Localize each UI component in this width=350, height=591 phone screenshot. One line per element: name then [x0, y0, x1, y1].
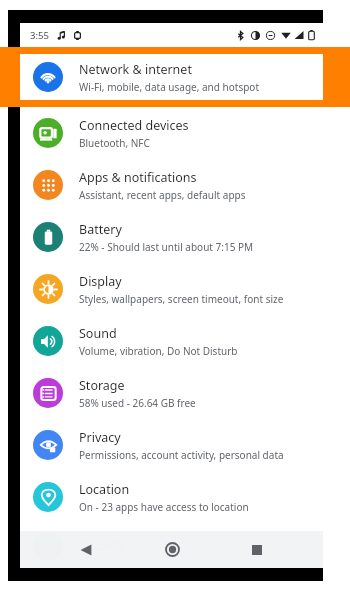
staticText: Sound: [79, 325, 117, 342]
button[interactable]: Storage: [20, 367, 323, 419]
button[interactable]: Home: [152, 531, 192, 568]
button[interactable]: Display: [20, 263, 323, 315]
staticText: Styles, wallpapers, screen timeout, font…: [79, 292, 284, 306]
button[interactable]: Battery: [20, 211, 323, 263]
staticText: 3:55: [30, 29, 49, 42]
staticText: Volume, vibration, Do Not Disturb: [79, 344, 238, 358]
button[interactable]: Network & internet: [20, 54, 323, 100]
staticText: Assistant, recent apps, default apps: [79, 188, 246, 202]
button[interactable]: Recent apps: [237, 531, 277, 568]
staticText: Apps & notifications: [79, 169, 197, 186]
button[interactable]: Sound: [20, 315, 323, 367]
staticText: 22% - Should last until about 7:15 PM: [79, 240, 254, 254]
button[interactable]: Security: [20, 523, 323, 568]
staticText: Wi-Fi, mobile, data usage, and hotspot: [79, 80, 259, 94]
staticText: Display: [79, 273, 122, 290]
staticText: Bluetooth, NFC: [79, 136, 150, 150]
staticText: Connected devices: [79, 117, 189, 134]
button[interactable]: Connected devices: [20, 107, 323, 159]
staticText: Security: [79, 537, 126, 554]
button[interactable]: Back: [66, 531, 106, 568]
button[interactable]: Location: [20, 471, 323, 523]
staticText: Storage: [79, 377, 125, 394]
staticText: 58% used - 26.64 GB free: [79, 396, 196, 410]
staticText: Permissions, account activity, personal …: [79, 448, 284, 462]
staticText: On - 23 apps have access to location: [79, 500, 249, 514]
button[interactable]: Privacy: [20, 419, 323, 471]
staticText: Battery: [79, 221, 122, 238]
staticText: Network & internet: [79, 61, 192, 78]
staticText: Privacy: [79, 429, 121, 446]
button[interactable]: Apps & notifications: [20, 159, 323, 211]
staticText: Location: [79, 481, 130, 498]
